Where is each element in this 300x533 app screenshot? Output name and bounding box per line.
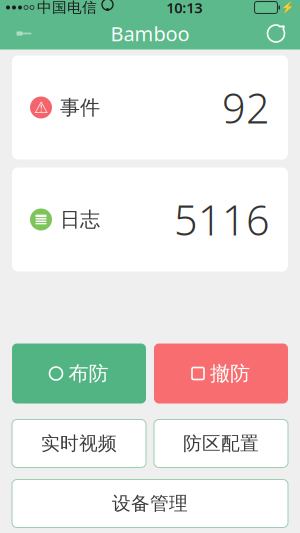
staticText: 防区配置: [183, 432, 259, 455]
staticText: 设备管理: [112, 492, 188, 515]
staticText: 布防: [68, 361, 108, 386]
button[interactable]: 撤防: [154, 343, 288, 403]
staticText: 事件: [60, 95, 100, 120]
staticText: 中国电信: [37, 0, 97, 16]
staticText: 92: [222, 80, 270, 135]
button[interactable]: 实时视频: [12, 419, 146, 467]
staticText: ⚠: [34, 98, 48, 117]
staticText: 日志: [60, 207, 100, 232]
button[interactable]: 防区配置: [154, 419, 288, 467]
staticText: ⚡: [281, 1, 294, 14]
staticText: 5116: [174, 192, 270, 247]
button[interactable]: ⚠: [12, 55, 288, 159]
button[interactable]: Refresh: [256, 17, 296, 49]
button[interactable]: 日志: [12, 167, 288, 271]
staticText: 10:13: [166, 0, 202, 17]
button[interactable]: 设备管理: [12, 479, 288, 527]
staticText: 撤防: [210, 361, 250, 386]
staticText: Bamboo: [110, 20, 189, 47]
button[interactable]: Back: [4, 17, 44, 49]
staticText: 实时视频: [41, 432, 117, 455]
button[interactable]: 布防: [12, 343, 146, 403]
